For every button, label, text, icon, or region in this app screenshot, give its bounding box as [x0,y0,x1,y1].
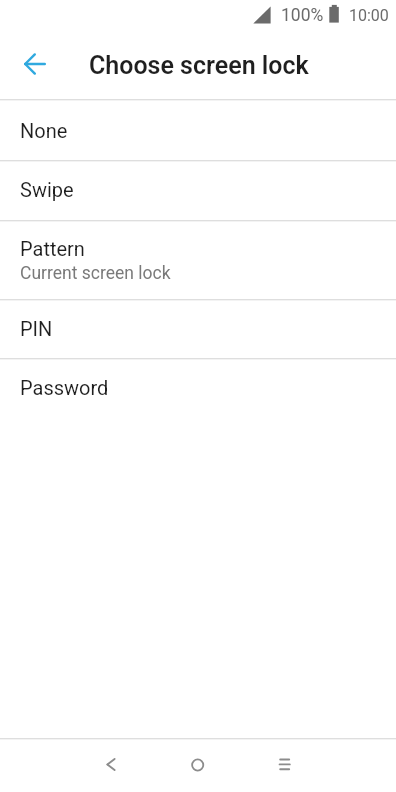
staticText: Current screen lock [20,263,171,284]
staticText: PIN [20,317,53,340]
button[interactable]: PIN [0,300,396,358]
staticText: Password [20,376,109,399]
button[interactable]: Back [87,740,135,788]
button[interactable]: Navigate up [11,40,59,88]
button[interactable]: Swipe [0,161,396,220]
button[interactable]: Home [174,740,222,788]
staticText: None [20,119,68,142]
button[interactable]: Recent apps [261,740,309,788]
staticText: 100% [281,5,324,26]
staticText: 10:00 [349,6,389,25]
button[interactable]: None [0,100,396,160]
staticText: Swipe [20,178,74,201]
staticText: Choose screen lock [89,51,309,80]
button[interactable]: Pattern [0,221,396,299]
staticText: Pattern [20,237,85,260]
button[interactable]: Password [0,359,396,417]
